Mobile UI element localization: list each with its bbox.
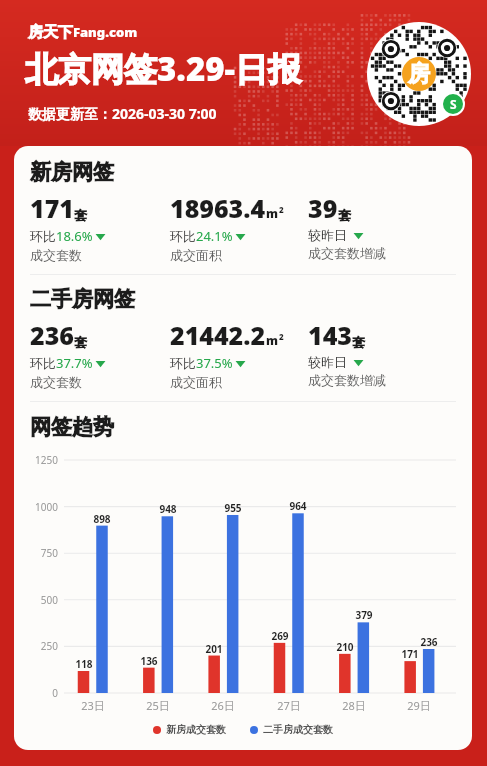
staticText: 房 [408, 60, 430, 88]
staticText: 成交面积 [170, 374, 222, 390]
staticText: 21442.2 [170, 318, 266, 352]
staticText: 较昨日 [308, 354, 347, 370]
staticText: 数据更新至：2026-03-30 7:00 [28, 104, 217, 123]
staticText: 环比 [30, 228, 56, 244]
staticText: 成交套数增减 [308, 372, 386, 388]
staticText: 136 [134, 654, 164, 668]
staticText: 1250 [14, 453, 58, 467]
staticText: 成交面积 [170, 247, 222, 263]
staticText: S [450, 96, 457, 112]
button[interactable]: 18963.4 [170, 191, 308, 263]
staticText: 948 [153, 502, 183, 516]
staticText: 网签趋势 [30, 414, 114, 440]
staticText: 18963.4 [170, 191, 266, 225]
staticText: 269 [265, 629, 295, 643]
staticText: 新房成交套数 [166, 723, 226, 736]
staticText: 成交套数 [30, 374, 82, 390]
staticText: 201 [199, 642, 229, 656]
staticText: 较昨日 [308, 227, 347, 243]
staticText: 955 [218, 501, 248, 515]
staticText: 28日 [334, 698, 374, 713]
staticText: 171 [30, 191, 74, 225]
staticText: 二手房成交套数 [263, 723, 333, 736]
staticText: 26日 [203, 698, 243, 713]
staticText: 套 [352, 334, 365, 350]
staticText: 500 [14, 593, 58, 607]
button[interactable]: 236 [30, 318, 170, 390]
staticText: 套 [74, 207, 87, 223]
staticText: 二手房网签 [30, 286, 135, 312]
staticText: 新房网签 [30, 159, 114, 185]
staticText: m [266, 332, 279, 348]
staticText: 898 [87, 512, 117, 526]
staticText: 236 [30, 318, 74, 352]
staticText: 北京网签3.29-日报 [25, 46, 302, 91]
staticText: 套 [74, 334, 87, 350]
staticText: 37.7% [56, 354, 93, 372]
staticText: 250 [14, 639, 58, 653]
staticText: 18.6% [56, 227, 93, 245]
staticText: 143 [308, 318, 352, 352]
staticText: 0 [14, 686, 58, 700]
staticText: 39 [308, 191, 338, 225]
staticText: 房天下 [28, 23, 73, 42]
staticText: 171 [395, 647, 425, 661]
staticText: 环比 [170, 228, 196, 244]
staticText: 环比 [30, 355, 56, 371]
staticText: 23日 [73, 698, 113, 713]
staticText: Fang.com [73, 23, 138, 41]
staticText: 25日 [138, 698, 178, 713]
staticText: 29日 [399, 698, 439, 713]
button[interactable]: 二手房成交套数 [250, 723, 333, 736]
staticText: 成交套数 [30, 247, 82, 263]
staticText: 964 [283, 499, 313, 513]
staticText: 2 [279, 204, 284, 215]
staticText: 成交套数增减 [308, 245, 386, 261]
staticText: 2 [279, 331, 284, 342]
button[interactable]: 39 [308, 191, 466, 261]
staticText: 210 [330, 640, 360, 654]
staticText: 750 [14, 546, 58, 560]
button[interactable]: 171 [30, 191, 170, 263]
staticText: 套 [338, 207, 351, 223]
button[interactable]: 143 [308, 318, 466, 388]
staticText: 37.5% [196, 354, 233, 372]
staticText: 1000 [14, 500, 58, 514]
button[interactable]: 21442.2 [170, 318, 308, 390]
staticText: 379 [349, 608, 379, 622]
staticText: m [266, 205, 279, 221]
staticText: 236 [414, 635, 444, 649]
button[interactable]: 扫描二维码关注 [367, 22, 471, 126]
staticText: 118 [69, 657, 99, 671]
staticText: 环比 [170, 355, 196, 371]
staticText: 27日 [269, 698, 309, 713]
button[interactable]: 新房成交套数 [153, 723, 226, 736]
staticText: 24.1% [196, 227, 233, 245]
